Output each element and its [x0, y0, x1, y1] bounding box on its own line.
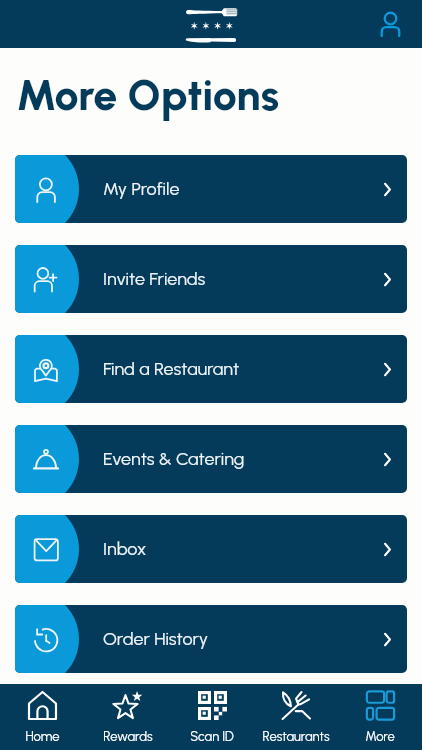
button[interactable]: Restaurants — [254, 684, 338, 750]
button[interactable]: Account — [370, 4, 410, 44]
staticText: Inbox — [103, 538, 147, 560]
button[interactable]: Scan ID — [170, 684, 254, 750]
staticText: Order History — [103, 628, 209, 650]
staticText: Rewards — [103, 729, 153, 745]
button[interactable]: My Profile — [15, 155, 407, 223]
staticText: More Options — [16, 69, 280, 121]
staticText: My Profile — [103, 178, 180, 200]
staticText: More — [365, 729, 395, 745]
button[interactable]: Invite Friends — [15, 245, 407, 313]
button[interactable]: Find a Restaurant — [15, 335, 407, 403]
button[interactable]: More — [338, 684, 422, 750]
staticText: Restaurants — [262, 729, 330, 745]
button[interactable]: Order History — [15, 605, 407, 673]
staticText: Invite Friends — [103, 268, 206, 290]
staticText: Scan ID — [190, 729, 234, 745]
button[interactable]: Inbox — [15, 515, 407, 583]
button[interactable]: Events & Catering — [15, 425, 407, 493]
button[interactable]: Home — [0, 684, 85, 750]
staticText: Find a Restaurant — [103, 358, 240, 380]
staticText: Events & Catering — [103, 448, 245, 470]
staticText: Home — [25, 729, 60, 745]
button[interactable]: Rewards — [85, 684, 170, 750]
